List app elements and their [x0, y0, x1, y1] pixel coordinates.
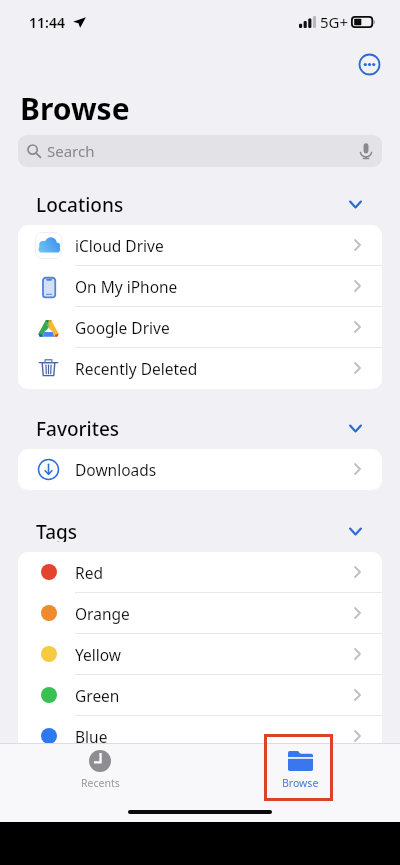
button[interactable]: Blue	[18, 716, 382, 757]
staticText: Browse	[282, 776, 319, 790]
button[interactable]: Collapse Favorites	[344, 417, 366, 439]
staticText: Green	[75, 685, 120, 706]
staticText: 11:44	[29, 13, 65, 32]
button[interactable]: Google Drive	[18, 307, 382, 348]
staticText: Search	[47, 141, 95, 161]
button[interactable]: Collapse Tags	[344, 520, 366, 542]
staticText: Blue	[75, 726, 108, 747]
staticText: Favorites	[36, 416, 120, 439]
staticText: Yellow	[75, 644, 121, 665]
button[interactable]: Green	[18, 675, 382, 716]
button[interactable]: Collapse Locations	[344, 193, 366, 215]
staticText: Google Drive	[75, 317, 170, 338]
staticText: Recently Deleted	[75, 358, 198, 379]
staticText: iCloud Drive	[75, 235, 164, 256]
button[interactable]: On My iPhone	[18, 266, 382, 307]
button[interactable]: Browse	[266, 744, 334, 796]
staticText: Tags	[36, 519, 78, 542]
button[interactable]: iCloud Drive	[18, 225, 382, 266]
staticText: Locations	[36, 192, 124, 215]
staticText: Browse	[20, 88, 130, 129]
staticText: On My iPhone	[75, 276, 178, 297]
button[interactable]: More options	[355, 50, 384, 79]
button[interactable]: Red	[18, 552, 382, 593]
staticText: Downloads	[75, 459, 157, 480]
staticText: 5G+	[320, 12, 349, 32]
staticText: Red	[75, 562, 103, 583]
button[interactable]: Yellow	[18, 634, 382, 675]
button[interactable]: Search	[18, 135, 382, 167]
button[interactable]: Downloads	[18, 449, 382, 490]
staticText: Recents	[81, 776, 120, 790]
button[interactable]: Orange	[18, 593, 382, 634]
staticText: Orange	[75, 603, 130, 624]
button[interactable]: Recently Deleted	[18, 348, 382, 389]
button[interactable]: Recents	[66, 744, 134, 796]
